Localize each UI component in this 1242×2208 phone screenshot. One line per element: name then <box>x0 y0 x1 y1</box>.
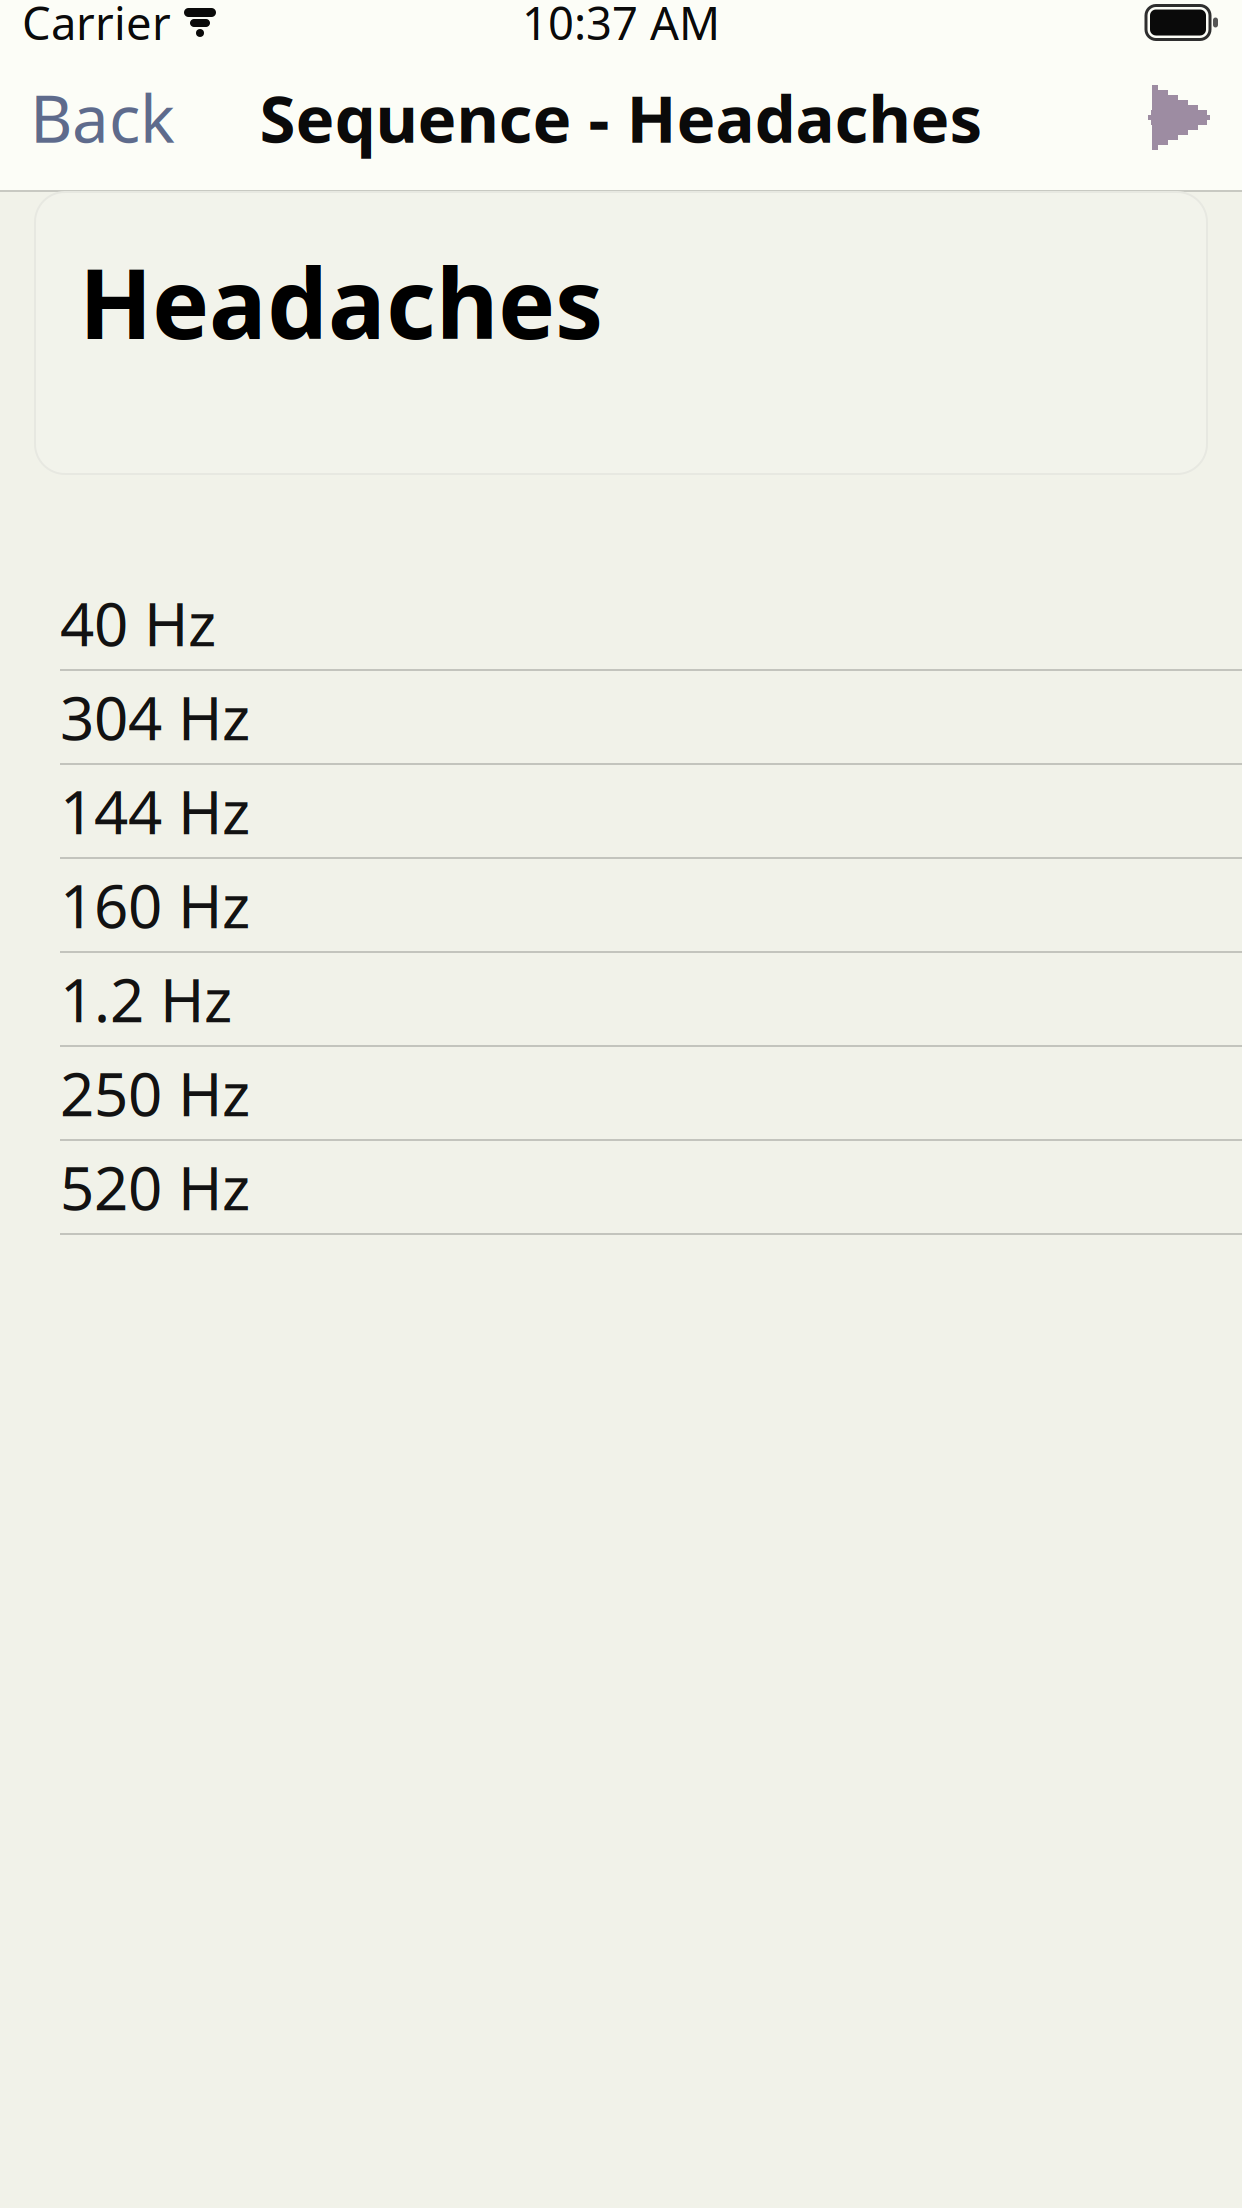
staticText: 144 Hz <box>60 771 250 851</box>
staticText: 160 Hz <box>60 865 250 945</box>
button[interactable]: Play <box>1122 61 1242 174</box>
staticText: Sequence - Headaches <box>259 74 982 161</box>
staticText: 10:37 AM <box>522 0 720 53</box>
staticText: Carrier <box>22 0 171 53</box>
button[interactable]: 520 Hz <box>0 1141 1242 1235</box>
staticText: 304 Hz <box>60 677 250 757</box>
staticText: Back <box>30 74 175 161</box>
button[interactable]: 144 Hz <box>0 765 1242 859</box>
button[interactable]: 160 Hz <box>0 859 1242 953</box>
staticText: 520 Hz <box>60 1147 250 1227</box>
staticText: Headaches <box>79 238 603 365</box>
button[interactable]: 1.2 Hz <box>0 953 1242 1047</box>
staticText: 40 Hz <box>60 583 216 663</box>
button[interactable]: 40 Hz <box>0 577 1242 671</box>
staticText: 250 Hz <box>60 1053 250 1133</box>
button[interactable]: Back <box>0 48 205 187</box>
staticText: 1.2 Hz <box>60 959 232 1039</box>
button[interactable]: 304 Hz <box>0 671 1242 765</box>
button[interactable]: 250 Hz <box>0 1047 1242 1141</box>
